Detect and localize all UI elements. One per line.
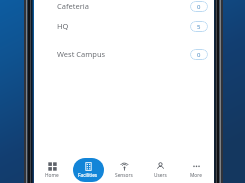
button[interactable]: More	[178, 157, 214, 183]
button[interactable]: Home	[34, 157, 70, 183]
staticText: West Campus	[57, 49, 106, 59]
button[interactable]: West Campus	[34, 40, 214, 68]
staticText: Sensors	[115, 172, 133, 179]
staticText: More	[190, 172, 202, 179]
staticText: Users	[154, 172, 167, 179]
staticText: Home	[45, 172, 59, 179]
button[interactable]: Users	[142, 157, 178, 183]
staticText: Cafeteria	[57, 1, 89, 11]
staticText: 0	[197, 51, 201, 59]
other: Facilities	[84, 162, 93, 171]
staticText: Facilities	[78, 172, 98, 179]
staticText: HQ	[57, 21, 69, 31]
button[interactable]: Sensors	[106, 157, 142, 183]
staticText: 0	[197, 3, 201, 11]
button[interactable]: Cafeteria	[34, 0, 214, 12]
other: Sensors	[120, 162, 129, 171]
button[interactable]: Facilities	[70, 157, 106, 183]
other: Users	[156, 162, 165, 171]
other: More	[192, 162, 201, 171]
button[interactable]: HQ	[34, 12, 214, 40]
other: Home	[48, 162, 57, 171]
staticText: 5	[197, 23, 201, 31]
